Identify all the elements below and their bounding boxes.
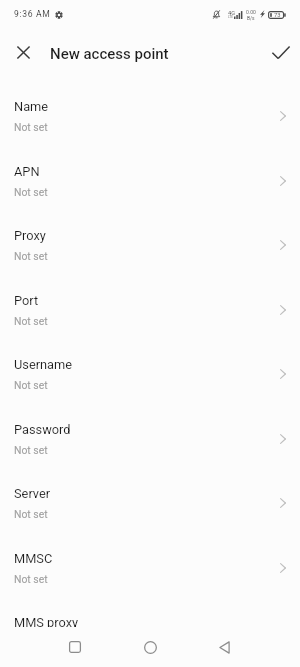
staticText: New access point [50,45,169,63]
staticText: APN [14,164,40,179]
staticText: 9:36 AM [14,9,51,19]
button[interactable]: Username [0,354,300,419]
staticText: Not set [14,573,48,585]
button[interactable]: Recents [57,629,93,665]
button[interactable]: Close [7,36,40,69]
staticText: LTE [228,15,234,19]
staticText: Not set [14,444,48,456]
staticText: Not set [14,315,48,327]
staticText: B/s [247,15,255,21]
button[interactable]: Password [0,419,300,484]
staticText: Proxy [14,228,46,243]
button[interactable]: Home [132,629,168,665]
button[interactable]: Port [0,290,300,355]
staticText: MMS proxy [14,615,79,630]
button[interactable]: Server [0,483,300,548]
staticText: 0.00 [246,9,256,15]
staticText: Not set [14,379,48,391]
button[interactable]: APN [0,161,300,226]
button[interactable]: MMS proxy [0,612,300,667]
button[interactable]: Name [0,96,300,161]
staticText: Not set [14,508,48,520]
button[interactable]: MMSC [0,548,300,613]
staticText: Port [14,293,39,308]
button[interactable]: Proxy [0,225,300,290]
staticText: Name [14,99,49,114]
staticText: Not set [14,250,48,262]
staticText: Username [14,357,73,372]
staticText: MMSC [14,551,53,566]
button[interactable]: Back [206,629,242,665]
staticText: Password [14,422,71,437]
staticText: Not set [14,186,48,198]
staticText: 73 [274,12,281,19]
button[interactable]: Save [264,36,297,69]
staticText: Not set [14,121,48,133]
staticText: Server [14,486,51,501]
staticText: 4G [228,10,235,17]
